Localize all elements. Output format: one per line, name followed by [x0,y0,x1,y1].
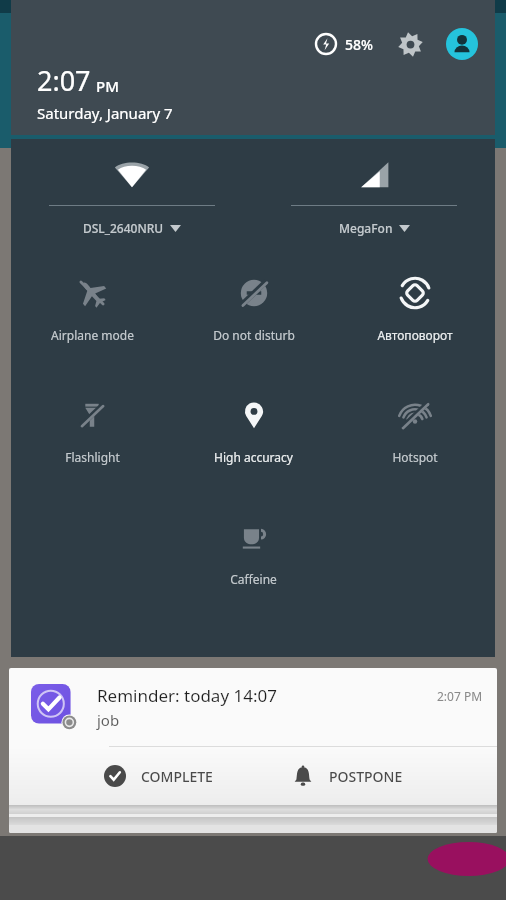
button[interactable]: MegaFon [291,139,457,249]
staticText: 58% [345,35,373,54]
button[interactable]: Caffeine [173,507,334,607]
staticText: High accuracy [214,449,293,465]
button[interactable]: Airplane mode [11,263,173,363]
staticText: MegaFon [339,220,393,236]
staticText: 2:07 [37,62,91,99]
staticText: COMPLETE [141,767,213,786]
button[interactable]: High accuracy [173,385,334,485]
staticText: 2:07 PM [437,688,483,704]
button[interactable]: Settings [391,25,429,63]
button[interactable]: Battery charging [309,27,343,61]
button[interactable]: User [443,25,481,63]
button[interactable]: COMPLETE [95,754,221,798]
button[interactable]: Hotspot [334,385,495,485]
staticText: Airplane mode [51,327,134,343]
button[interactable]: DSL_2640NRU [49,139,215,249]
staticText: Reminder: today 14:07 [97,684,277,707]
staticText: Do not disturb [213,327,295,343]
button[interactable]: Flashlight [11,385,173,485]
staticText: Автоповорот [377,327,453,343]
staticText: Hotspot [392,449,438,465]
staticText: Caffeine [230,571,277,587]
staticText: DSL_2640NRU [83,220,164,236]
staticText: job [97,710,120,730]
staticText: POSTPONE [329,767,403,786]
staticText: Saturday, January 7 [37,103,173,123]
staticText: PM [96,76,119,96]
button[interactable]: POSTPONE [283,754,411,798]
button[interactable]: Do not disturb [173,263,334,363]
button[interactable]: Reminder: today 14:07 [9,668,497,746]
button[interactable]: Автоповорот [334,263,495,363]
staticText: Flashlight [65,449,120,465]
